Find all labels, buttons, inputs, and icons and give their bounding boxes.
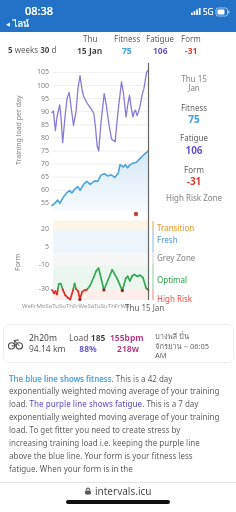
staticText: 2h20m <box>29 332 57 344</box>
staticText: 60 <box>27 185 49 195</box>
staticText: Optimal <box>157 274 188 285</box>
staticText: 20 <box>27 224 49 234</box>
staticText: 75 <box>157 112 231 126</box>
staticText: Fresh <box>157 234 178 245</box>
staticText: Form <box>181 33 201 44</box>
staticText: 5 <box>27 242 49 252</box>
staticText: 70 <box>27 159 49 169</box>
staticText: จักรยาน ~ 06:05 <box>155 340 210 352</box>
staticText: Jan <box>157 82 231 93</box>
button[interactable]: Back to LINE <box>5 17 30 31</box>
staticText: 75 <box>27 146 49 156</box>
staticText: The blue line shows fitness. This is a 4… <box>9 373 220 474</box>
staticText: 15 Jan <box>77 45 103 57</box>
staticText: 88% <box>69 343 107 355</box>
staticText: Thu 15 Jan <box>125 302 165 313</box>
button[interactable]: 5 weeks 30 d <box>8 44 57 55</box>
staticText: Fatigue <box>146 33 174 44</box>
staticText: 75 <box>122 45 132 57</box>
staticText: 106 <box>157 143 231 157</box>
staticText: 95 <box>27 94 49 104</box>
staticText: 55 <box>27 198 49 208</box>
staticText: intervals.icu <box>95 484 152 498</box>
staticText: 90 <box>27 107 49 117</box>
staticText: Grey Zone <box>157 252 196 263</box>
staticText: Form <box>13 253 23 271</box>
staticText: 5G <box>203 6 214 17</box>
staticText: 106 <box>153 45 168 57</box>
staticText: -31 <box>185 45 198 57</box>
staticText: WeFrMoSaTuSuThFrWeSaTuSuThFrWe <box>22 302 130 310</box>
staticText: บางพลี ปั่น <box>155 330 190 342</box>
staticText: Load 185 <box>69 332 106 344</box>
staticText: High Risk <box>157 293 193 304</box>
staticText: Thu <box>83 33 98 44</box>
staticText: 155bpm <box>110 332 144 344</box>
staticText: 85 <box>27 120 49 130</box>
staticText: 94.14 km <box>29 343 66 355</box>
staticText: High Risk Zone <box>157 192 231 203</box>
staticText: 80 <box>27 133 49 143</box>
staticText: 08:38 <box>25 3 54 18</box>
staticText: Thu 15 <box>157 73 231 84</box>
staticText: 65 <box>27 172 49 182</box>
staticText: Fatigue <box>157 132 231 143</box>
staticText: -30 <box>27 284 49 294</box>
staticText: 218w <box>110 343 146 355</box>
staticText: Fitness <box>114 33 141 44</box>
staticText: 100 <box>27 81 49 91</box>
staticText: -10 <box>27 260 49 270</box>
staticText: Training load per day <box>14 95 24 165</box>
staticText: AM <box>155 350 167 360</box>
staticText: 105 <box>27 67 49 77</box>
staticText: Transition <box>157 222 195 233</box>
button[interactable]: intervals.icu <box>0 484 236 498</box>
staticText: -31 <box>157 174 231 188</box>
button[interactable]: 2h20m <box>3 324 234 363</box>
staticText: ไลน์ <box>13 17 30 31</box>
staticText: Fitness <box>157 102 231 113</box>
staticText: Form <box>157 164 231 175</box>
